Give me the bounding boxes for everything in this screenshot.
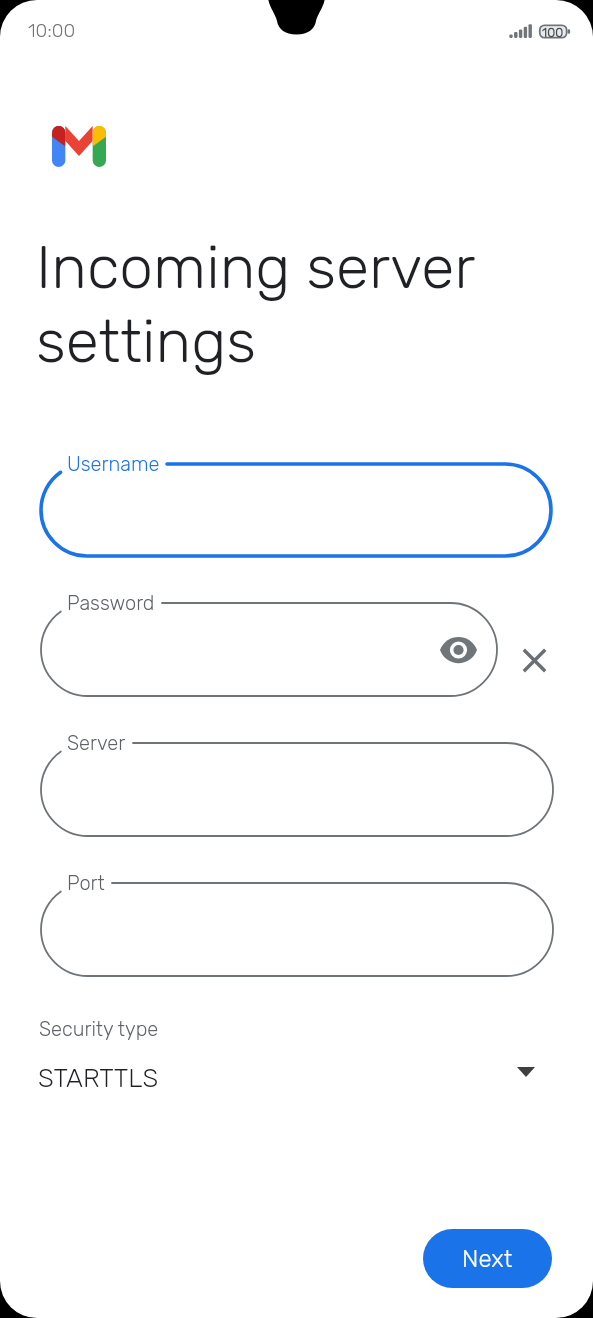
button[interactable]: Username — [35, 458, 557, 562]
button[interactable]: Server — [35, 737, 559, 842]
staticText: Next — [462, 1245, 513, 1273]
staticText: Server — [67, 731, 126, 755]
staticText: Port — [67, 871, 105, 895]
staticText: Password — [67, 591, 155, 615]
button[interactable]: Port — [35, 877, 559, 982]
button[interactable]: Next — [423, 1229, 552, 1288]
staticText: STARTTLS — [38, 1063, 159, 1094]
staticText: 100 — [542, 25, 564, 39]
staticText: Security type — [39, 1017, 159, 1041]
button[interactable]: Password — [35, 597, 503, 702]
button[interactable]: Clear — [512, 638, 557, 683]
staticText: Incoming server settings — [36, 231, 476, 377]
button[interactable]: Expand security type — [504, 1050, 548, 1094]
staticText: 10:00 — [28, 19, 76, 42]
button[interactable]: Show password — [434, 626, 482, 674]
staticText: Username — [67, 452, 160, 476]
